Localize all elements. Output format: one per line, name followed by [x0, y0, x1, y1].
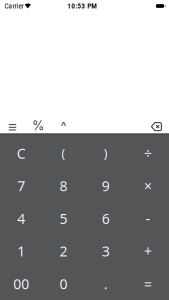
staticText: 8 [59, 176, 67, 195]
staticText: - [145, 209, 150, 228]
staticText: = [144, 274, 152, 293]
staticText: 10:53 PM [67, 2, 97, 10]
staticText: 3 [102, 242, 110, 261]
button[interactable]: + [127, 235, 169, 267]
button[interactable]: ^ [51, 116, 76, 135]
staticText: 00 [13, 274, 29, 293]
staticText: Carrier [4, 2, 23, 10]
button[interactable]: 4 [0, 202, 42, 235]
button[interactable]: 6 [84, 202, 127, 235]
staticText: C [17, 144, 26, 163]
staticText: 0 [59, 274, 67, 293]
button[interactable]: 00 [0, 267, 42, 300]
staticText: ^ [60, 119, 66, 134]
button[interactable]: 0 [42, 267, 84, 300]
button[interactable]: 7 [0, 170, 42, 202]
button[interactable]: - [127, 202, 169, 235]
button[interactable]: 8 [42, 170, 84, 202]
button[interactable]: 9 [84, 170, 127, 202]
button[interactable]: = [127, 267, 169, 300]
button[interactable]: ( [42, 137, 84, 170]
staticText: 9 [102, 176, 110, 195]
button[interactable]: C [0, 137, 42, 170]
staticText: 6 [102, 209, 110, 228]
staticText: 1 [17, 242, 25, 261]
button[interactable]: 1 [0, 235, 42, 267]
button[interactable]: Backspace [142, 116, 169, 135]
staticText: × [144, 176, 152, 195]
button[interactable]: % [25, 116, 51, 135]
button[interactable]: ) [84, 137, 127, 170]
button[interactable]: ÷ [127, 137, 169, 170]
staticText: . [104, 274, 108, 293]
button[interactable]: 3 [84, 235, 127, 267]
button[interactable]: 5 [42, 202, 84, 235]
staticText: % [32, 118, 44, 133]
staticText: ( [61, 145, 65, 161]
staticText: 4 [17, 209, 25, 228]
staticText: + [144, 242, 152, 261]
button[interactable]: . [84, 267, 127, 300]
staticText: 5 [59, 209, 67, 228]
staticText: 7 [17, 176, 25, 195]
staticText: 2 [59, 242, 67, 261]
button[interactable]: 2 [42, 235, 84, 267]
staticText: ) [104, 145, 108, 161]
button[interactable]: × [127, 170, 169, 202]
button[interactable]: Menu [0, 116, 25, 135]
staticText: ÷ [144, 144, 152, 163]
